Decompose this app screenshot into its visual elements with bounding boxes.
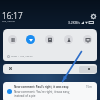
staticText: Today • Thu, Aug 20 bbox=[11, 55, 33, 58]
staticText: 3.2KB/s bbox=[68, 20, 80, 25]
button[interactable]: Quick setting 3 bbox=[64, 35, 73, 44]
staticText: Thu, Aug 20 bbox=[2, 20, 15, 23]
button[interactable]: Quick setting 2 bbox=[45, 35, 54, 44]
button[interactable]: Quick setting 1 bbox=[26, 35, 35, 44]
staticText: New comment: You're right, it was easy, bbox=[14, 90, 70, 94]
button[interactable]: Settings bbox=[90, 13, 97, 20]
staticText: 15m bbox=[86, 85, 92, 89]
staticText: instead of a pie bbox=[14, 94, 36, 98]
button[interactable]: Quick setting 4 bbox=[83, 35, 92, 44]
staticText: New comment: Paul's right, it was easy. bbox=[14, 85, 70, 89]
staticText: 16:17 bbox=[2, 10, 23, 21]
button[interactable]: Dismiss bbox=[9, 67, 12, 70]
button[interactable]: New comment: Paul's right, it was easy. bbox=[3, 82, 97, 100]
button[interactable]: Dismiss bbox=[3, 64, 97, 74]
button[interactable]: Quick setting 0 bbox=[8, 35, 17, 44]
